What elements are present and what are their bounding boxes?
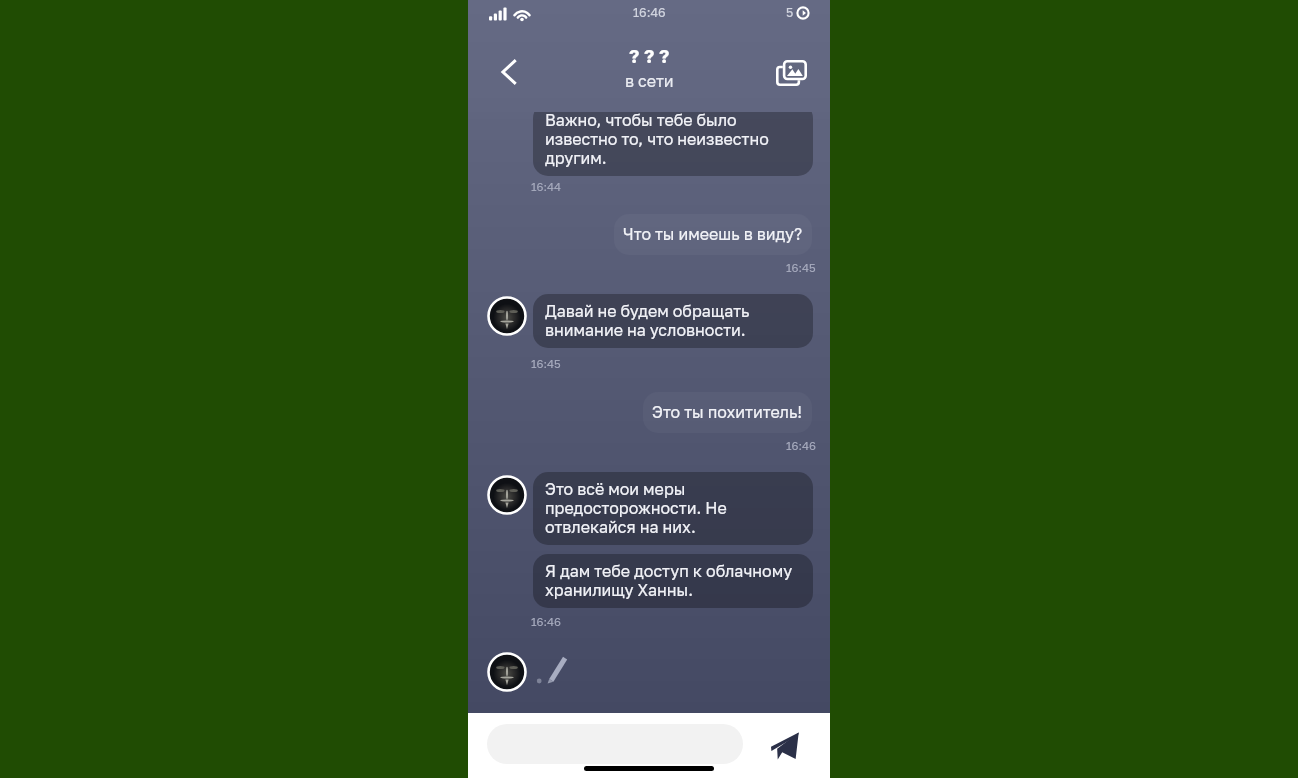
staticText: 16:46 bbox=[786, 439, 816, 453]
staticText: 16:44 bbox=[531, 180, 562, 194]
staticText: Я дам тебе доступ к облачному хранилищу … bbox=[545, 562, 801, 600]
staticText: Важно, чтобы тебе было известно то, что … bbox=[545, 111, 801, 168]
staticText: Это всё мои меры предосторожности. Не от… bbox=[545, 480, 801, 537]
button[interactable]: Gallery bbox=[772, 56, 810, 90]
staticText: 16:45 bbox=[531, 357, 561, 371]
button[interactable]: Back bbox=[494, 52, 524, 92]
staticText: Давай не будем обращать внимание на усло… bbox=[545, 302, 801, 340]
staticText: Что ты имеешь в виду? bbox=[623, 225, 803, 244]
button[interactable]: Что ты имеешь в виду? bbox=[614, 214, 812, 255]
staticText: 16:46 bbox=[531, 615, 561, 629]
staticText: 5 bbox=[786, 5, 794, 20]
button[interactable]: Давай не будем обращать внимание на усло… bbox=[533, 294, 813, 348]
button[interactable]: Send bbox=[767, 728, 803, 764]
staticText: ? ? ? bbox=[629, 44, 670, 67]
button[interactable]: Это всё мои меры предосторожности. Не от… bbox=[533, 472, 813, 545]
staticText: Это ты похититель! bbox=[652, 403, 803, 422]
staticText: 16:45 bbox=[786, 261, 816, 275]
button[interactable]: Это ты похититель! bbox=[643, 392, 812, 433]
staticText: 16:46 bbox=[633, 5, 666, 20]
button[interactable]: Важно, чтобы тебе было известно то, что … bbox=[533, 103, 813, 176]
staticText: в сети bbox=[625, 71, 674, 90]
button[interactable]: Я дам тебе доступ к облачному хранилищу … bbox=[533, 554, 813, 608]
